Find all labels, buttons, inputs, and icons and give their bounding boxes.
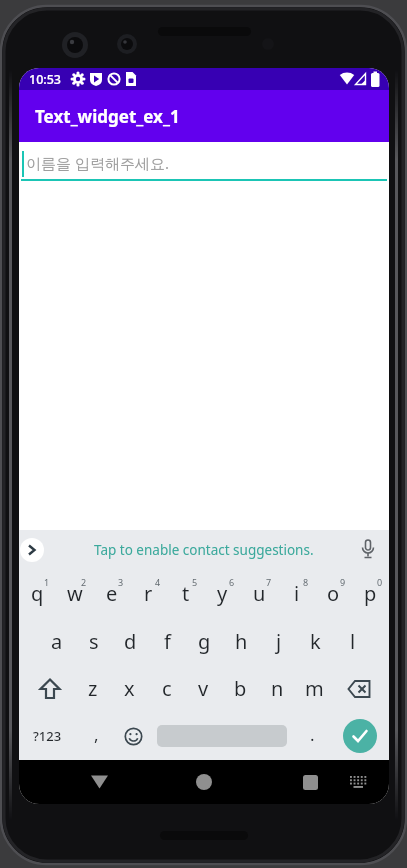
button[interactable]: x [111,665,148,712]
staticText: ?123 [33,727,62,745]
staticText: q [31,580,44,607]
button[interactable] [119,722,147,750]
button[interactable]: q [19,570,56,617]
staticText: 0 [377,576,383,588]
staticText: v [198,675,209,702]
button[interactable]: Tap to enable contact suggestions. [19,530,389,570]
staticText: o [327,580,340,607]
staticText: m [305,675,324,702]
staticText: . [310,723,315,746]
staticText: d [124,628,137,655]
button[interactable]: a [38,618,75,665]
button[interactable]: r [130,570,167,617]
button[interactable]: n [259,665,296,712]
button[interactable] [333,665,389,712]
staticText: h [235,628,248,655]
button[interactable]: y [204,570,241,617]
button[interactable]: 이름을 입력해주세요. [19,142,389,530]
staticText: t [182,580,190,607]
button[interactable] [19,665,74,712]
button[interactable] [81,764,117,800]
button[interactable] [186,764,222,800]
button[interactable] [355,537,381,563]
button[interactable]: ?123 [19,712,75,760]
staticText: p [364,580,377,607]
staticText: 8 [303,576,309,588]
staticText: w [67,580,83,607]
staticText: j [276,628,282,655]
staticText: 2 [81,576,87,588]
staticText: k [310,628,321,655]
staticText: 이름을 입력해주세요. [26,153,169,173]
staticText: r [144,580,153,607]
staticText: g [198,628,211,655]
button[interactable]: i [278,570,315,617]
button[interactable]: z [74,665,111,712]
staticText: f [164,628,171,655]
staticText: n [271,675,284,702]
button[interactable]: h [223,618,260,665]
button[interactable]: p [352,570,389,617]
staticText: b [234,675,247,702]
staticText: z [88,675,98,702]
button[interactable]: w [56,570,93,617]
button[interactable]: e [93,570,130,617]
staticText: , [94,723,99,746]
button[interactable]: Text_widget_ex_1 [19,90,389,142]
button[interactable] [342,766,374,798]
button[interactable]: g [186,618,223,665]
staticText: 7 [266,576,272,588]
button[interactable]: . [298,712,326,756]
staticText: l [350,628,356,655]
button[interactable] [343,719,377,753]
button[interactable]: k [297,618,334,665]
button[interactable]: f [149,618,186,665]
button[interactable]: o [315,570,352,617]
button[interactable]: v [185,665,222,712]
staticText: 1 [44,576,50,588]
button[interactable]: b [222,665,259,712]
staticText: 9 [340,576,346,588]
staticText: Tap to enable contact suggestions. [94,541,314,559]
staticText: 4 [155,576,161,588]
button[interactable]: u [241,570,278,617]
staticText: u [253,580,266,607]
button[interactable]: d [112,618,149,665]
staticText: x [124,675,135,702]
staticText: i [294,580,300,607]
button[interactable]: l [334,618,371,665]
staticText: 10:53 [29,71,62,88]
button[interactable]: j [260,618,297,665]
button[interactable] [20,538,44,562]
staticText: 3 [118,576,124,588]
staticText: s [89,628,99,655]
staticText: a [51,628,63,655]
staticText: e [106,580,118,607]
staticText: 6 [229,576,235,588]
button[interactable]: t [167,570,204,617]
staticText: c [162,675,172,702]
button[interactable] [292,764,328,800]
staticText: Text_widget_ex_1 [35,105,180,128]
button[interactable]: m [296,665,333,712]
button[interactable]: , [82,712,110,756]
button[interactable]: c [148,665,185,712]
button[interactable]: s [75,618,112,665]
staticText: y [217,580,228,607]
staticText: 5 [192,576,198,588]
